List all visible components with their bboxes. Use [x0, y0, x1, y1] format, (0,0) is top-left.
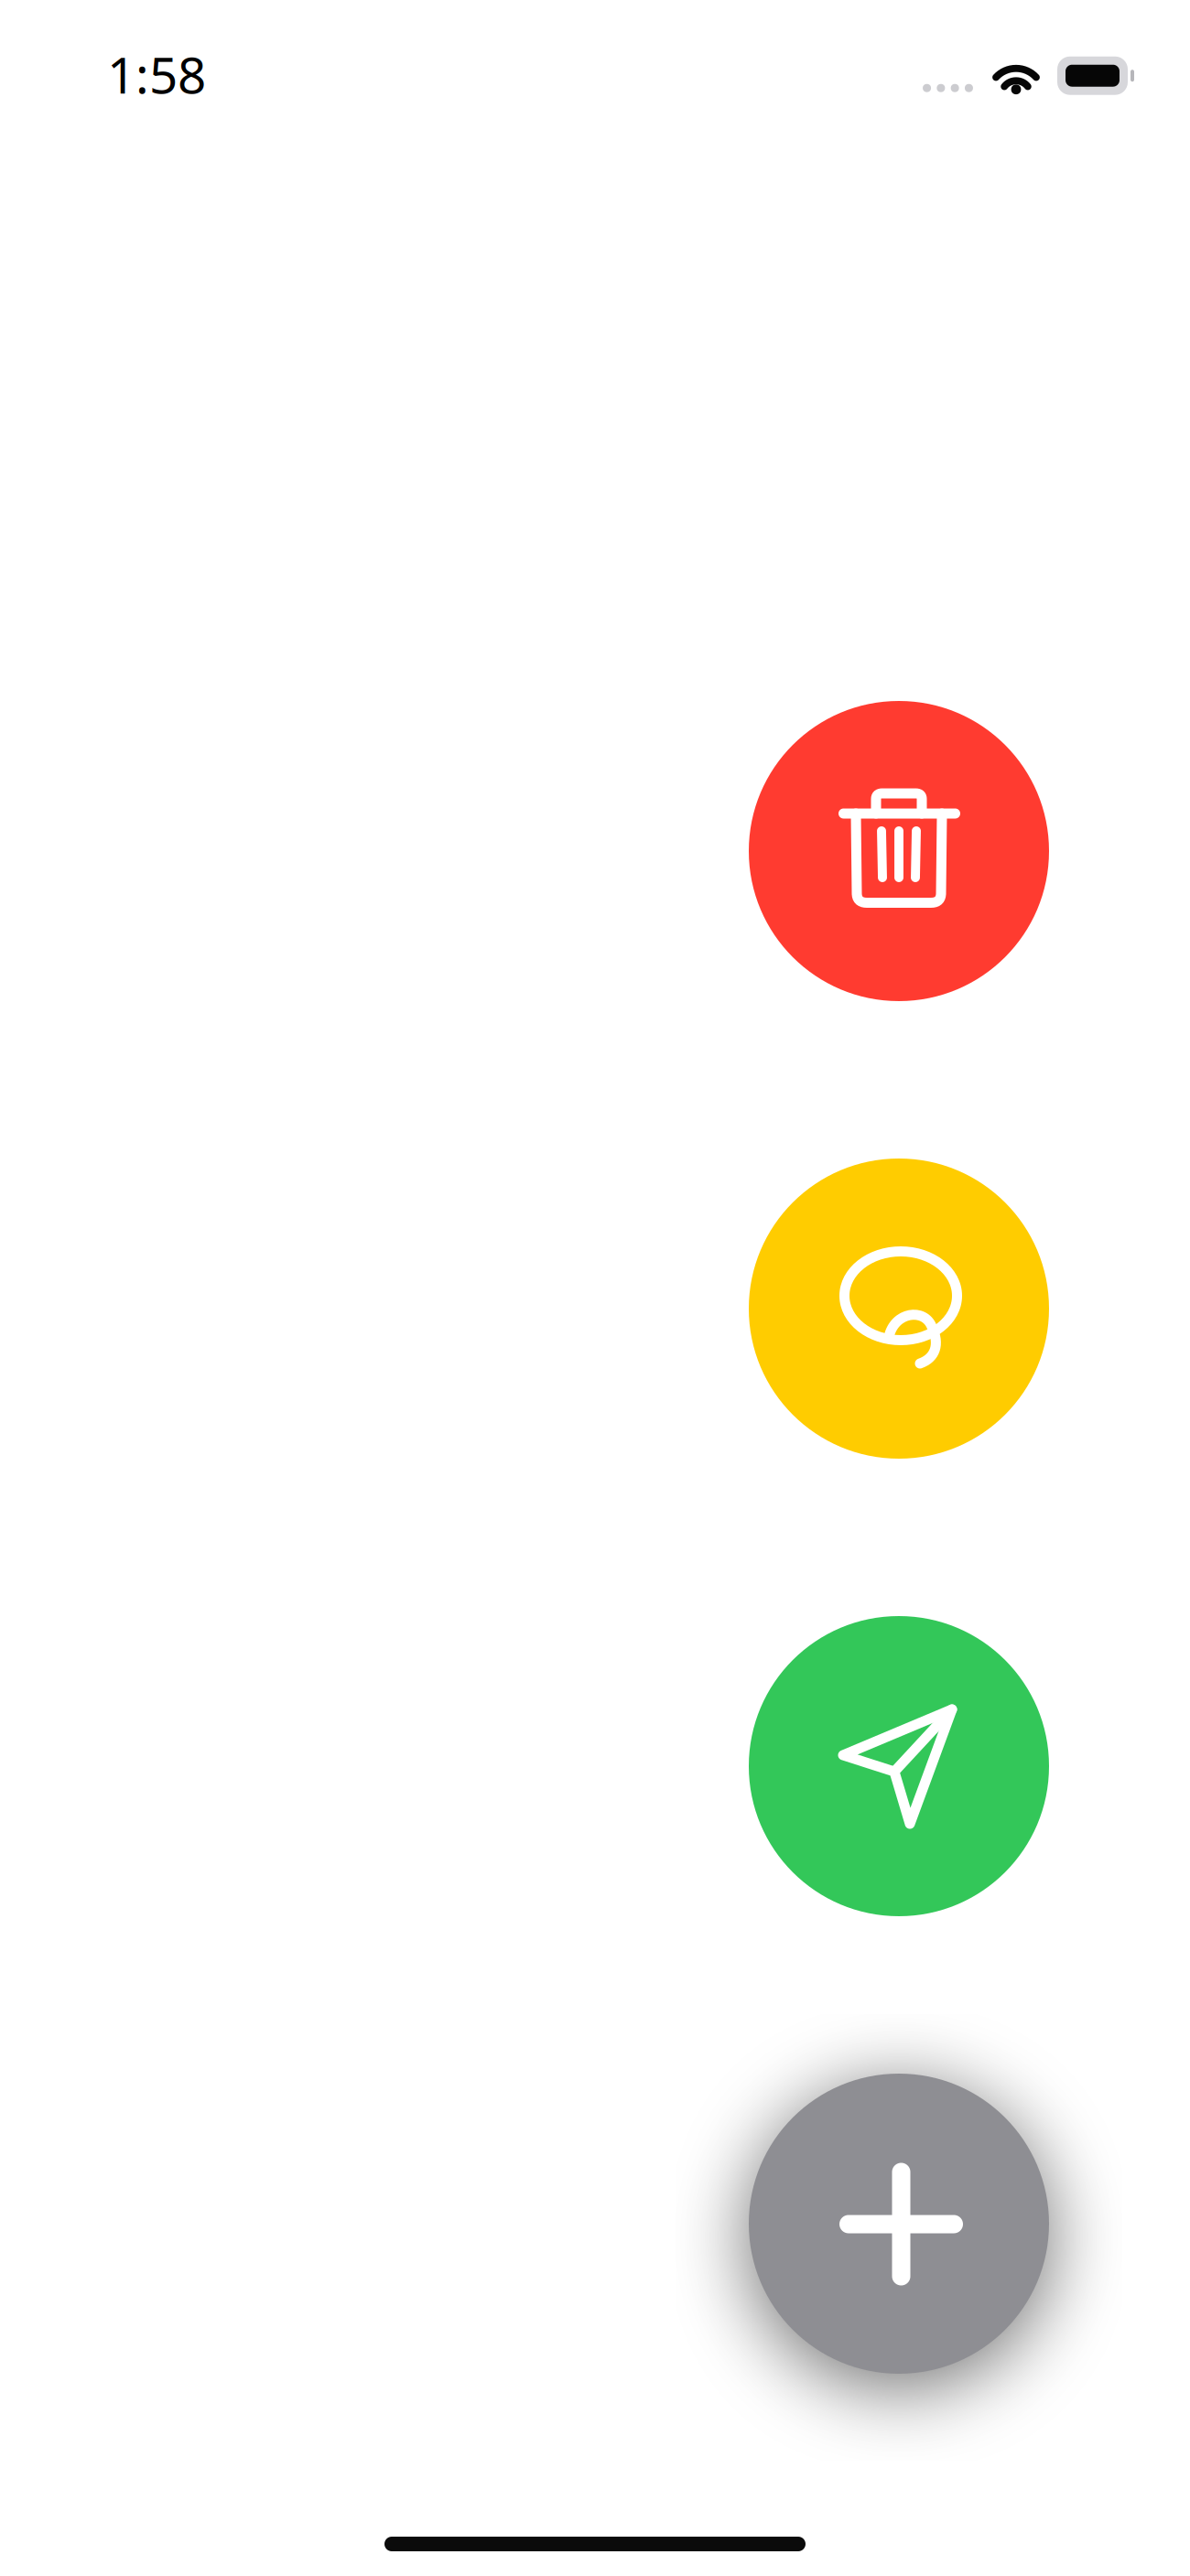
button[interactable]: Delete: [749, 701, 1049, 1001]
button[interactable]: Add: [749, 2074, 1049, 2374]
button[interactable]: Send: [749, 1616, 1049, 1916]
staticText: 1:58: [107, 41, 206, 107]
button[interactable]: Comment: [749, 1159, 1049, 1459]
